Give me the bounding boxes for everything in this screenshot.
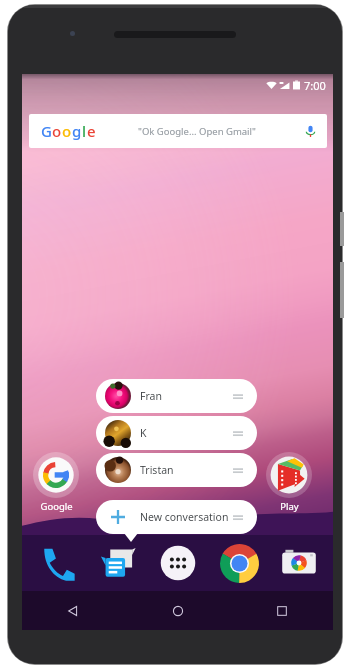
staticText: Fran bbox=[140, 389, 162, 403]
staticText: G bbox=[41, 121, 52, 141]
staticText: e bbox=[87, 121, 96, 141]
staticText: g bbox=[72, 121, 82, 141]
staticText: Tristan bbox=[140, 463, 174, 477]
staticText: 7:00 bbox=[304, 78, 326, 93]
staticText: Google bbox=[40, 500, 73, 513]
button[interactable]: G bbox=[29, 114, 327, 148]
staticText: o bbox=[62, 121, 72, 141]
button[interactable]: Fran bbox=[96, 379, 257, 413]
button[interactable]: Phone bbox=[33, 539, 81, 587]
staticText: l bbox=[82, 121, 87, 141]
staticText: K bbox=[140, 426, 147, 440]
staticText: "Ok Google... Open Gmail" bbox=[138, 125, 256, 138]
button[interactable]: Back bbox=[56, 594, 90, 628]
staticText: o bbox=[52, 121, 62, 141]
staticText: Play bbox=[280, 500, 299, 513]
button[interactable]: Messages bbox=[92, 539, 140, 587]
button[interactable]: Camera bbox=[275, 539, 323, 587]
button[interactable]: Chrome bbox=[215, 539, 263, 587]
button[interactable]: New conversation bbox=[96, 500, 257, 534]
button[interactable]: Tristan bbox=[96, 453, 257, 487]
button[interactable]: Play bbox=[264, 452, 314, 513]
button[interactable]: K bbox=[96, 416, 257, 450]
button[interactable]: Home bbox=[161, 594, 195, 628]
button[interactable]: All apps bbox=[154, 539, 202, 587]
button[interactable]: Recents bbox=[265, 594, 299, 628]
staticText: New conversation bbox=[140, 510, 229, 524]
button[interactable]: Google bbox=[31, 452, 81, 513]
